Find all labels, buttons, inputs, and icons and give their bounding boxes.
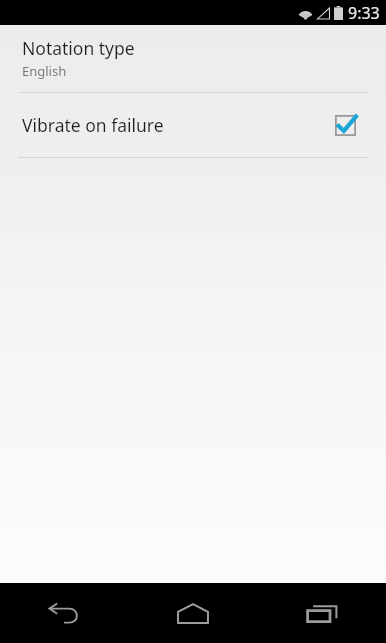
staticText: 9:33 [348,2,380,24]
button[interactable]: Home [128,583,257,643]
button[interactable]: Vibrate on failure [0,93,386,157]
staticText: Vibrate on failure [22,113,335,137]
other: Vibrate on failure checkbox [335,115,356,136]
button[interactable]: Recent apps [257,583,386,643]
button[interactable]: Notation type [0,25,386,92]
button[interactable]: Back [0,583,128,643]
staticText: Notation type [22,36,135,60]
staticText: English [22,62,67,80]
